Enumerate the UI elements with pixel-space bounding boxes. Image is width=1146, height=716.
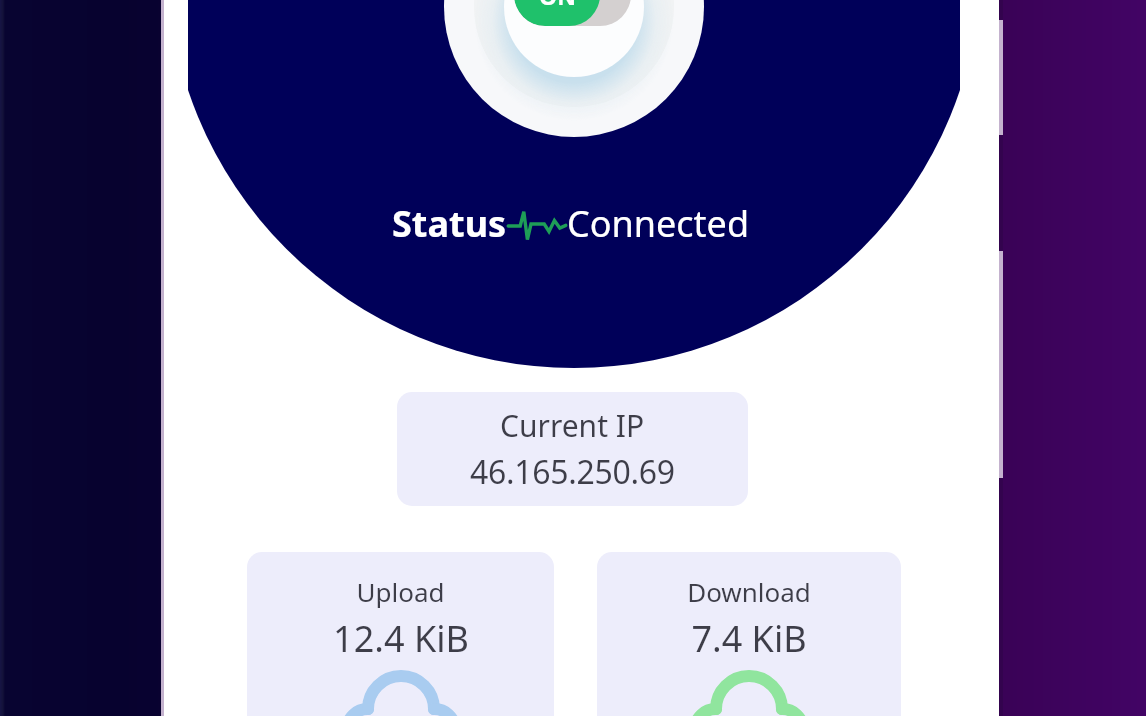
staticText: 7.4 KiB (691, 614, 807, 663)
staticText: Upload (356, 574, 445, 609)
staticText: Download (687, 574, 811, 609)
staticText: 12.4 KiB (333, 614, 469, 663)
staticText: ON (539, 0, 576, 11)
staticText: Connected (567, 199, 750, 248)
button[interactable]: Download (597, 552, 901, 716)
staticText: 46.165.250.69 (470, 450, 675, 494)
staticText: Status (392, 199, 507, 248)
button[interactable]: Upload (247, 552, 554, 716)
button[interactable]: VPN power toggle (504, 0, 644, 77)
staticText: Current IP (500, 405, 645, 446)
button[interactable]: VPN on off switch (514, 0, 631, 26)
button[interactable]: Current IP (397, 392, 748, 506)
